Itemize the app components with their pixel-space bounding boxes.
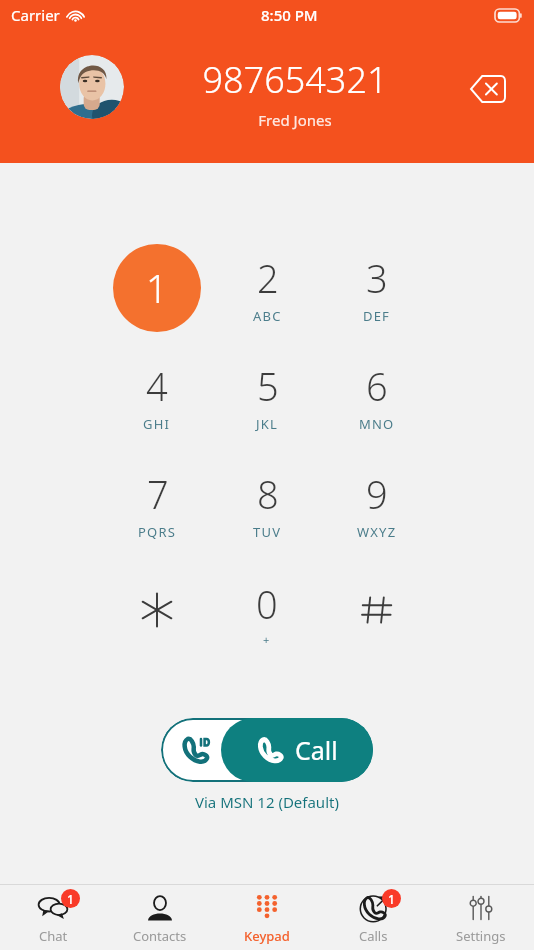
- button[interactable]: Backspace: [466, 67, 510, 111]
- staticText: 4: [146, 360, 168, 412]
- staticText: 2: [257, 252, 279, 304]
- staticText: 8: [257, 468, 279, 520]
- button[interactable]: Settings: [427, 885, 534, 950]
- staticText: 6: [366, 360, 388, 412]
- button[interactable]: 9: [333, 460, 421, 548]
- staticText: ABC: [253, 307, 282, 325]
- staticText: Via MSN 12 (Default): [195, 792, 339, 812]
- staticText: PQRS: [138, 523, 177, 541]
- button[interactable]: 1: [113, 244, 201, 332]
- staticText: 9: [366, 468, 388, 520]
- staticText: 8:50 PM: [261, 5, 318, 25]
- staticText: 1: [67, 891, 74, 907]
- staticText: Call: [295, 733, 338, 767]
- button[interactable]: 5: [223, 352, 311, 440]
- button[interactable]: Caller ID: [161, 718, 229, 782]
- staticText: DEF: [363, 307, 391, 325]
- button[interactable]: 7: [113, 460, 201, 548]
- button[interactable]: 4: [113, 352, 201, 440]
- staticText: 987654321: [202, 55, 388, 104]
- staticText: Fred Jones: [258, 110, 332, 130]
- staticText: Calls: [359, 927, 388, 945]
- staticText: +: [263, 632, 271, 647]
- staticText: 7: [147, 468, 169, 520]
- staticText: Contacts: [133, 927, 187, 945]
- staticText: GHI: [143, 415, 171, 433]
- button[interactable]: 1: [320, 885, 427, 950]
- staticText: Settings: [456, 927, 506, 945]
- button[interactable]: [333, 568, 421, 656]
- staticText: 1: [388, 891, 395, 907]
- staticText: 3: [366, 252, 388, 304]
- button[interactable]: 0: [223, 568, 311, 656]
- button[interactable]: 1: [0, 885, 106, 950]
- staticText: WXYZ: [357, 523, 397, 541]
- staticText: JKL: [256, 415, 279, 433]
- staticText: 0: [256, 578, 278, 630]
- staticText: 1: [146, 262, 168, 314]
- staticText: TUV: [253, 523, 282, 541]
- staticText: Keypad: [244, 927, 290, 945]
- button[interactable]: Keypad: [213, 885, 320, 950]
- staticText: 5: [257, 360, 279, 412]
- button[interactable]: 3: [333, 244, 421, 332]
- button[interactable]: 2: [223, 244, 311, 332]
- button[interactable]: 6: [333, 352, 421, 440]
- button[interactable]: Contacts: [106, 885, 213, 950]
- button[interactable]: 8: [223, 460, 311, 548]
- button[interactable]: Contact photo: [60, 55, 124, 119]
- staticText: Carrier: [11, 5, 60, 25]
- button[interactable]: Call: [221, 718, 373, 782]
- button[interactable]: [113, 568, 201, 656]
- staticText: MNO: [359, 415, 395, 433]
- staticText: Chat: [39, 927, 68, 945]
